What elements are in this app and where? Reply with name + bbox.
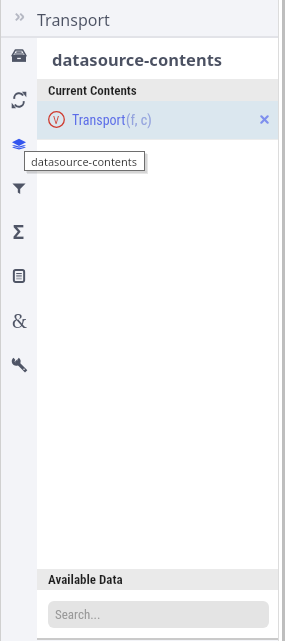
button[interactable]: Transport (0, 0, 285, 36)
staticText: Search... (55, 607, 101, 622)
staticText: Transport (72, 112, 126, 128)
staticText: (f, c) (126, 112, 152, 128)
button[interactable]: Filter (3, 172, 35, 204)
staticText: Σ (13, 219, 25, 245)
staticText: V (53, 114, 60, 127)
staticText: Transport (37, 9, 110, 31)
button[interactable]: Join (3, 304, 35, 336)
button[interactable]: Settings (3, 348, 35, 380)
button[interactable]: Layers (3, 128, 35, 160)
staticText: datasource-contents (31, 154, 138, 169)
button[interactable]: V (37, 101, 278, 139)
staticText: Available Data (48, 572, 123, 587)
staticText: datasource-contents (52, 48, 223, 70)
button[interactable]: Aggregate (3, 216, 35, 248)
button[interactable]: Refresh (3, 84, 35, 116)
staticText: & (12, 307, 27, 334)
button[interactable]: Search... (48, 601, 269, 628)
button[interactable]: Remove (255, 110, 274, 129)
button[interactable]: Archive (3, 40, 35, 72)
staticText: Current Contents (48, 83, 137, 98)
button[interactable]: Notes (3, 260, 35, 292)
